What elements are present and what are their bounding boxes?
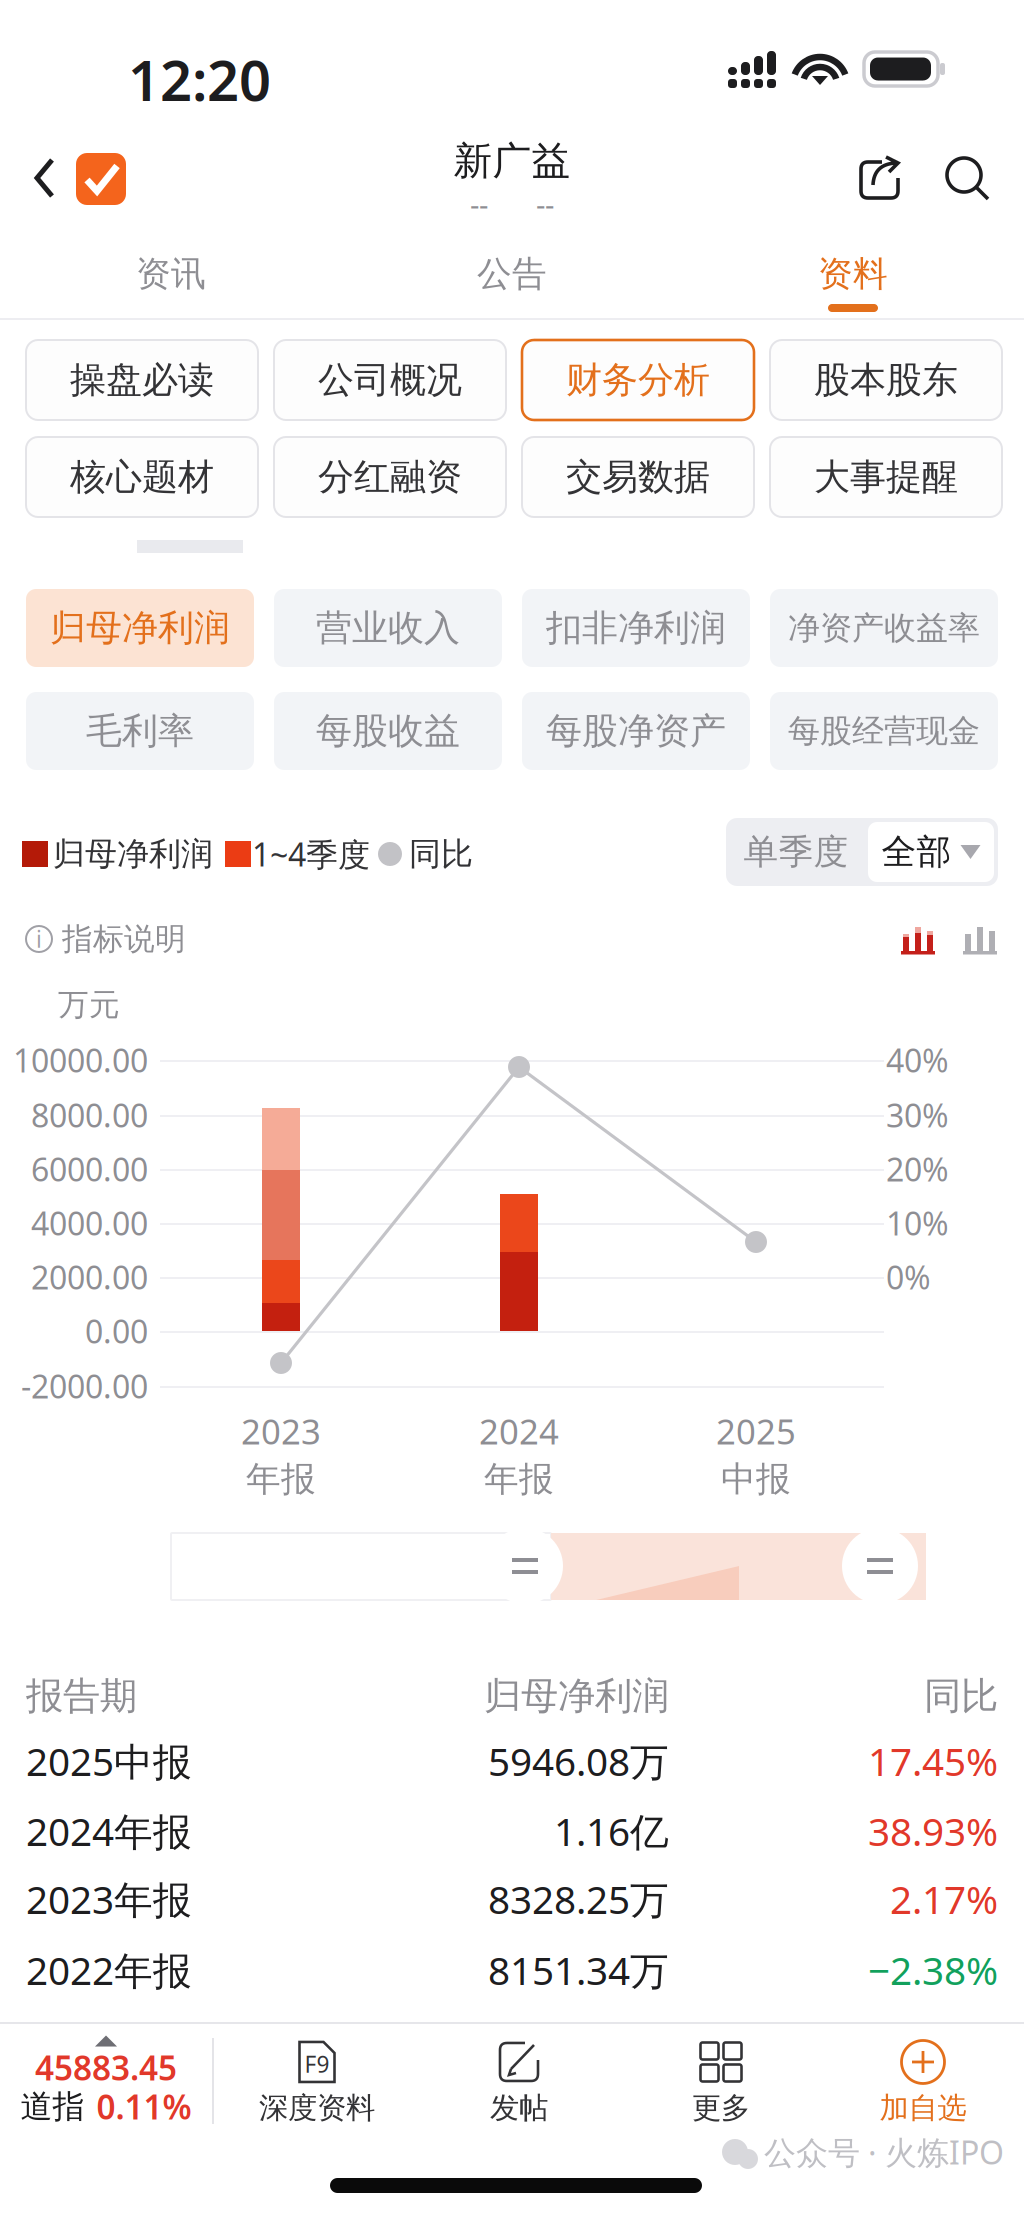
staticText: 2025中报: [26, 1735, 192, 1787]
button[interactable]: 全部: [868, 822, 994, 882]
staticText: 归母净利润: [53, 834, 213, 874]
button[interactable]: 核心题材: [26, 437, 258, 517]
staticText: 2025: [716, 1408, 796, 1454]
button[interactable]: 每股经营现金: [770, 692, 998, 770]
button[interactable]: 每股收益: [274, 692, 502, 770]
button[interactable]: F9: [216, 2030, 418, 2136]
staticText: 20%: [886, 1148, 949, 1190]
button[interactable]: 公司概况: [274, 340, 506, 420]
staticText: 公司概况: [318, 358, 462, 402]
staticText: 公众号 · 火炼IPO: [764, 2131, 1004, 2173]
staticText: 扣非净利润: [546, 606, 726, 650]
button[interactable]: 操盘必读: [26, 340, 258, 420]
staticText: 指标说明: [62, 920, 186, 958]
staticText: 新广益: [453, 137, 570, 185]
button[interactable]: 分享: [858, 156, 902, 202]
button[interactable]: 45883.45: [0, 2029, 212, 2130]
staticText: 发帖: [490, 2090, 548, 2126]
staticText: 核心题材: [70, 455, 214, 499]
button[interactable]: 资料: [682, 239, 1023, 319]
staticText: 30%: [886, 1094, 949, 1136]
staticText: 年报: [484, 1458, 554, 1501]
staticText: 年报: [246, 1458, 316, 1501]
button[interactable]: 分红融资: [274, 437, 506, 517]
staticText: 大事提醒: [814, 455, 958, 499]
staticText: 6000.00: [31, 1148, 148, 1190]
staticText: 5946.08万: [488, 1735, 669, 1787]
button[interactable]: 柱状图: [900, 925, 936, 955]
staticText: 2024: [479, 1408, 559, 1454]
staticText: 0.11%: [96, 2084, 191, 2129]
staticText: 12:20: [128, 42, 271, 116]
staticText: 8151.34万: [488, 1944, 669, 1996]
staticText: 2022年报: [26, 1944, 192, 1996]
staticText: i: [36, 924, 42, 954]
staticText: 加自选: [879, 2090, 966, 2126]
staticText: 财务分析: [566, 358, 710, 402]
staticText: 0%: [886, 1256, 931, 1298]
staticText: 2000.00: [31, 1256, 148, 1298]
staticText: 万元: [58, 986, 120, 1024]
staticText: 2023: [241, 1408, 321, 1454]
button[interactable]: 公告: [341, 239, 682, 319]
button[interactable]: 股本股东: [770, 340, 1002, 420]
staticText: 17.45%: [868, 1735, 998, 1787]
button[interactable]: 归母净利润: [26, 589, 254, 667]
button[interactable]: 扣非净利润: [522, 589, 750, 667]
button[interactable]: 资讯: [0, 239, 341, 319]
staticText: 深度资料: [259, 2090, 375, 2126]
staticText: 股本股东: [814, 358, 958, 402]
button[interactable]: 大事提醒: [770, 437, 1002, 517]
staticText: 资讯: [136, 253, 206, 295]
staticText: 每股收益: [316, 709, 460, 753]
staticText: 8328.25万: [488, 1873, 669, 1925]
staticText: 归母净利润: [50, 606, 230, 650]
staticText: 2024年报: [26, 1805, 192, 1857]
staticText: 操盘必读: [70, 358, 214, 402]
staticText: 中报: [721, 1458, 791, 1501]
button[interactable]: 发帖: [418, 2030, 620, 2136]
staticText: 归母净利润: [484, 1673, 669, 1719]
staticText: F9: [304, 2049, 329, 2079]
staticText: 营业收入: [316, 606, 460, 650]
staticText: -2000.00: [21, 1365, 148, 1407]
staticText: 1.16亿: [554, 1805, 669, 1857]
staticText: 2023年报: [26, 1873, 192, 1925]
staticText: −2.38%: [868, 1944, 998, 1996]
button[interactable]: 单季度: [726, 818, 866, 886]
button[interactable]: [34, 152, 144, 206]
staticText: 38.93%: [868, 1805, 998, 1857]
staticText: 公告: [477, 253, 547, 295]
staticText: 4000.00: [31, 1202, 148, 1244]
button[interactable]: 营业收入: [274, 589, 502, 667]
staticText: 单季度: [743, 831, 848, 873]
staticText: 报告期: [26, 1673, 137, 1719]
button[interactable]: 每股净资产: [522, 692, 750, 770]
staticText: 10%: [886, 1202, 949, 1244]
button[interactable]: 财务分析: [522, 340, 754, 420]
staticText: 0.00: [85, 1310, 148, 1352]
staticText: 1~4季度: [252, 833, 370, 875]
staticText: 分红融资: [318, 455, 462, 499]
button[interactable]: 搜索: [944, 156, 990, 202]
staticText: 45883.45: [35, 2045, 177, 2090]
staticText: 净资产收益率: [788, 608, 980, 648]
staticText: 10000.00: [13, 1039, 148, 1081]
staticText: 道指: [20, 2087, 84, 2126]
button[interactable]: i: [26, 918, 246, 960]
staticText: 资料: [818, 253, 888, 295]
button[interactable]: 毛利率: [26, 692, 254, 770]
staticText: 每股经营现金: [788, 711, 980, 751]
staticText: 2.17%: [890, 1873, 998, 1925]
staticText: 每股净资产: [546, 709, 726, 753]
button[interactable]: 更多: [620, 2030, 822, 2136]
button[interactable]: 加自选: [822, 2030, 1024, 2136]
button[interactable]: 交易数据: [522, 437, 754, 517]
staticText: 更多: [692, 2090, 750, 2126]
button[interactable]: 净资产收益率: [770, 589, 998, 667]
button[interactable]: 对比图: [962, 925, 998, 955]
staticText: 全部: [881, 831, 951, 873]
staticText: 8000.00: [31, 1094, 148, 1136]
staticText: 同比: [409, 834, 473, 874]
staticText: 40%: [886, 1039, 949, 1081]
